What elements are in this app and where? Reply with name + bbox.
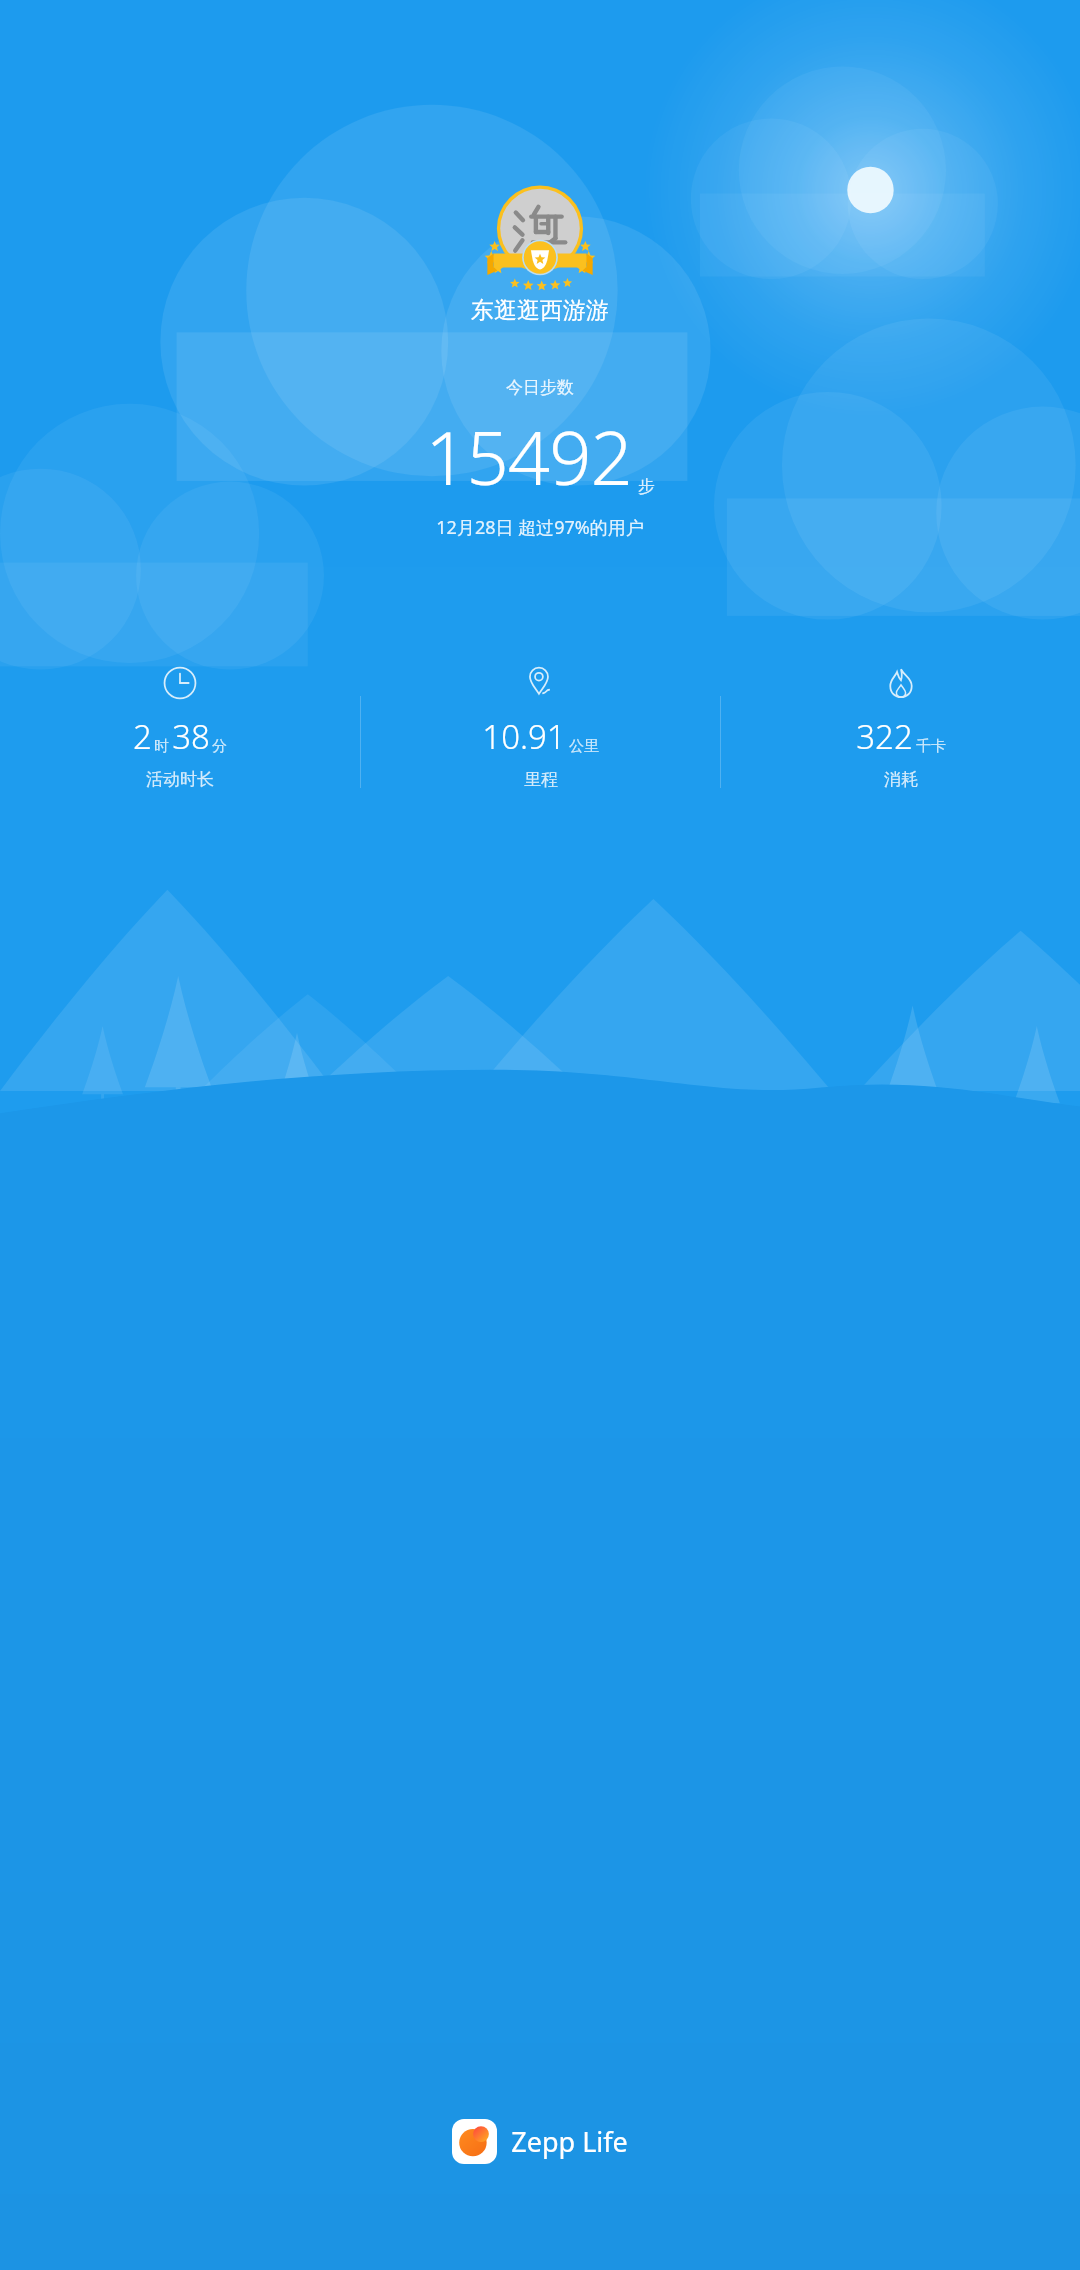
button[interactable]: 10.91 (361, 666, 720, 790)
button[interactable]: 成就徽章 东逛逛西游游 (484, 188, 596, 288)
staticText: 公里 (569, 737, 599, 756)
staticText: 2 (133, 714, 152, 759)
staticText: 东逛逛西游游 (471, 296, 609, 325)
staticText: 里程 (524, 769, 558, 790)
staticText: 10.91 (482, 714, 566, 759)
staticText: 12月28日 超过97%的用户 (436, 515, 644, 540)
button[interactable]: Zepp Life (440, 2113, 640, 2170)
staticText: 322 (856, 714, 913, 759)
staticText: 活动时长 (146, 769, 214, 790)
staticText: 38 (172, 714, 210, 759)
staticText: Zepp Life (511, 2123, 628, 2160)
staticText: 时 (154, 737, 169, 756)
button[interactable]: 322 (721, 666, 1080, 790)
staticText: 千卡 (916, 737, 946, 756)
staticText: 步 (638, 476, 655, 497)
staticText: 分 (212, 737, 227, 756)
staticText: 今日步数 (506, 377, 574, 398)
staticText: 消耗 (884, 769, 918, 790)
staticText: 15492 (425, 406, 632, 507)
button[interactable]: 2 (0, 666, 360, 790)
